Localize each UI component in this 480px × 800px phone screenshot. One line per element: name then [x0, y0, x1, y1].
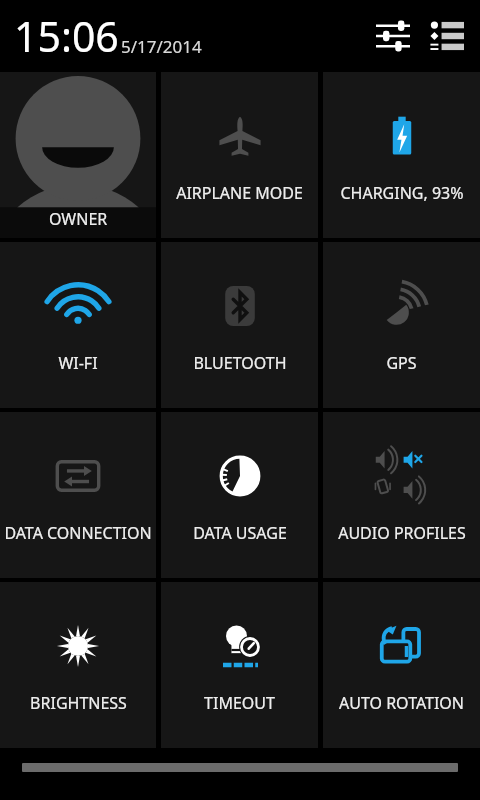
- staticText: OWNER: [49, 208, 108, 230]
- staticText: AUTO ROTATION: [339, 692, 464, 714]
- button[interactable]: CHARGING, 93%: [323, 72, 480, 238]
- staticText: AIRPLANE MODE: [176, 182, 303, 204]
- button[interactable]: BLUETOOTH: [161, 242, 318, 408]
- button[interactable]: GPS: [323, 242, 480, 408]
- button[interactable]: DATA CONNECTION: [0, 412, 156, 578]
- staticText: AUDIO PROFILES: [338, 522, 466, 544]
- button[interactable]: DATA USAGE: [161, 412, 318, 578]
- staticText: 15:06: [14, 8, 119, 64]
- button[interactable]: Collapse panel: [0, 754, 480, 780]
- button[interactable]: AIRPLANE MODE: [161, 72, 318, 238]
- staticText: TIMEOUT: [204, 692, 275, 714]
- staticText: WI-FI: [58, 352, 98, 374]
- staticText: DATA USAGE: [193, 522, 287, 544]
- button[interactable]: WI-FI: [0, 242, 156, 408]
- staticText: 5/17/2014: [121, 35, 202, 58]
- button[interactable]: Settings: [370, 13, 416, 59]
- button[interactable]: AUDIO PROFILES: [323, 412, 480, 578]
- staticText: BLUETOOTH: [193, 352, 287, 374]
- button[interactable]: TIMEOUT: [161, 582, 318, 748]
- button[interactable]: Notifications: [424, 13, 470, 59]
- button[interactable]: BRIGHTNESS: [0, 582, 156, 748]
- button[interactable]: AUTO ROTATION: [323, 582, 480, 748]
- staticText: DATA CONNECTION: [4, 522, 152, 544]
- staticText: BRIGHTNESS: [30, 692, 127, 714]
- staticText: CHARGING, 93%: [340, 182, 464, 204]
- staticText: GPS: [386, 352, 417, 374]
- button[interactable]: OWNER: [0, 72, 156, 238]
